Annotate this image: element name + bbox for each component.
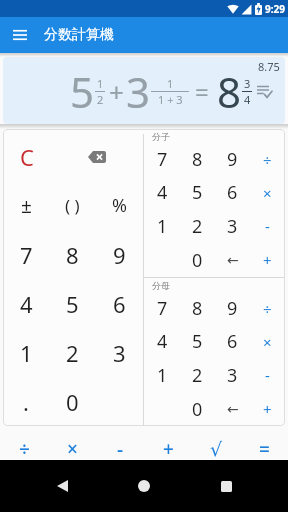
button[interactable]: C xyxy=(3,133,50,181)
button[interactable]: 3 xyxy=(215,358,250,392)
button[interactable]: 7 xyxy=(144,292,180,325)
button[interactable] xyxy=(50,133,143,181)
staticText: 3 xyxy=(227,363,238,388)
button[interactable]: 6 xyxy=(215,176,250,209)
button[interactable]: 2 xyxy=(49,328,96,377)
staticText: ← xyxy=(227,401,239,417)
button[interactable]: 9 xyxy=(215,292,250,325)
button[interactable] xyxy=(257,85,272,98)
button[interactable] xyxy=(42,466,82,506)
button[interactable]: + xyxy=(250,392,285,426)
button[interactable]: 5 xyxy=(49,279,96,328)
button[interactable]: 7 xyxy=(3,230,49,279)
staticText: ← xyxy=(227,252,239,268)
staticText: 3 xyxy=(126,63,151,120)
button[interactable]: ← xyxy=(215,243,250,277)
button[interactable]: 2 xyxy=(180,209,215,243)
button[interactable]: 9 xyxy=(96,230,143,279)
button[interactable]: 3 xyxy=(215,209,250,243)
staticText: + xyxy=(163,436,174,462)
staticText: 0 xyxy=(192,248,203,273)
button[interactable] xyxy=(144,392,180,426)
button[interactable]: = xyxy=(240,426,288,460)
staticText: 5 xyxy=(192,329,203,354)
button[interactable]: + xyxy=(144,426,192,460)
button[interactable]: 4 xyxy=(144,325,180,358)
button[interactable]: × xyxy=(48,426,96,460)
staticText: 5 xyxy=(66,289,79,319)
button[interactable]: 8 xyxy=(180,143,215,176)
button[interactable]: ± xyxy=(3,181,49,230)
staticText: ± xyxy=(21,193,32,219)
staticText: 4 xyxy=(244,92,251,107)
staticText: 1 + 3 xyxy=(158,92,183,107)
button[interactable]: × xyxy=(250,176,285,209)
button[interactable]: × xyxy=(250,325,285,358)
button[interactable]: 1 xyxy=(144,209,180,243)
staticText: 1 xyxy=(20,338,33,368)
staticText: 3 xyxy=(227,214,238,239)
staticText: ÷ xyxy=(19,436,30,462)
button[interactable]: 8 xyxy=(180,292,215,325)
staticText: 1 xyxy=(157,214,168,239)
staticText: 4 xyxy=(20,289,33,319)
staticText: × xyxy=(67,436,78,462)
staticText: ( ) xyxy=(65,194,80,217)
button[interactable]: - xyxy=(250,209,285,243)
button[interactable]: 8 xyxy=(49,230,96,279)
button[interactable]: % xyxy=(96,181,143,230)
button[interactable]: 6 xyxy=(96,279,143,328)
staticText: 8 xyxy=(192,296,203,321)
button[interactable]: 9 xyxy=(215,143,250,176)
button[interactable] xyxy=(0,17,40,53)
button[interactable]: 1 xyxy=(3,328,49,377)
button[interactable]: ← xyxy=(215,392,250,426)
staticText: 5 xyxy=(192,180,203,205)
button[interactable]: √ xyxy=(192,426,240,460)
button[interactable] xyxy=(206,466,246,506)
button[interactable]: ÷ xyxy=(0,426,48,460)
staticText: 3 xyxy=(113,338,126,368)
button[interactable]: 5 xyxy=(180,176,215,209)
staticText: - xyxy=(265,365,270,385)
button[interactable]: 7 xyxy=(144,143,180,176)
staticText: 1 xyxy=(97,76,104,91)
staticText: ÷ xyxy=(263,299,272,319)
staticText: 0 xyxy=(66,387,79,417)
staticText: 分数計算機 xyxy=(44,26,114,44)
staticText: 分母 xyxy=(152,280,170,291)
staticText: 6 xyxy=(227,329,238,354)
button[interactable]: - xyxy=(250,358,285,392)
button[interactable]: ÷ xyxy=(250,292,285,325)
button[interactable]: 0 xyxy=(180,392,215,426)
button[interactable]: 6 xyxy=(215,325,250,358)
button[interactable]: - xyxy=(96,426,144,460)
button[interactable] xyxy=(124,466,164,506)
button[interactable]: + xyxy=(250,243,285,277)
button[interactable]: . xyxy=(3,377,49,426)
button[interactable]: ( ) xyxy=(49,181,96,230)
staticText: 0 xyxy=(192,397,203,422)
button[interactable]: 5 xyxy=(180,325,215,358)
staticText: 9 xyxy=(227,147,238,172)
button[interactable]: 3 xyxy=(96,328,143,377)
button[interactable] xyxy=(96,377,143,426)
button[interactable]: 4 xyxy=(144,176,180,209)
staticText: 7 xyxy=(157,147,168,172)
staticText: + xyxy=(263,250,272,270)
button[interactable]: 0 xyxy=(49,377,96,426)
button[interactable]: 2 xyxy=(180,358,215,392)
staticText: 分子 xyxy=(152,131,170,142)
button[interactable]: ÷ xyxy=(250,143,285,176)
button[interactable]: 4 xyxy=(3,279,49,328)
staticText: 3 xyxy=(244,76,251,91)
staticText: × xyxy=(263,332,272,352)
staticText: + xyxy=(263,399,272,419)
button[interactable]: 0 xyxy=(180,243,215,277)
staticText: 8 xyxy=(192,147,203,172)
staticText: - xyxy=(265,216,270,236)
staticText: 8 xyxy=(217,63,242,120)
button[interactable]: 1 xyxy=(144,358,180,392)
staticText: 2 xyxy=(66,338,79,368)
